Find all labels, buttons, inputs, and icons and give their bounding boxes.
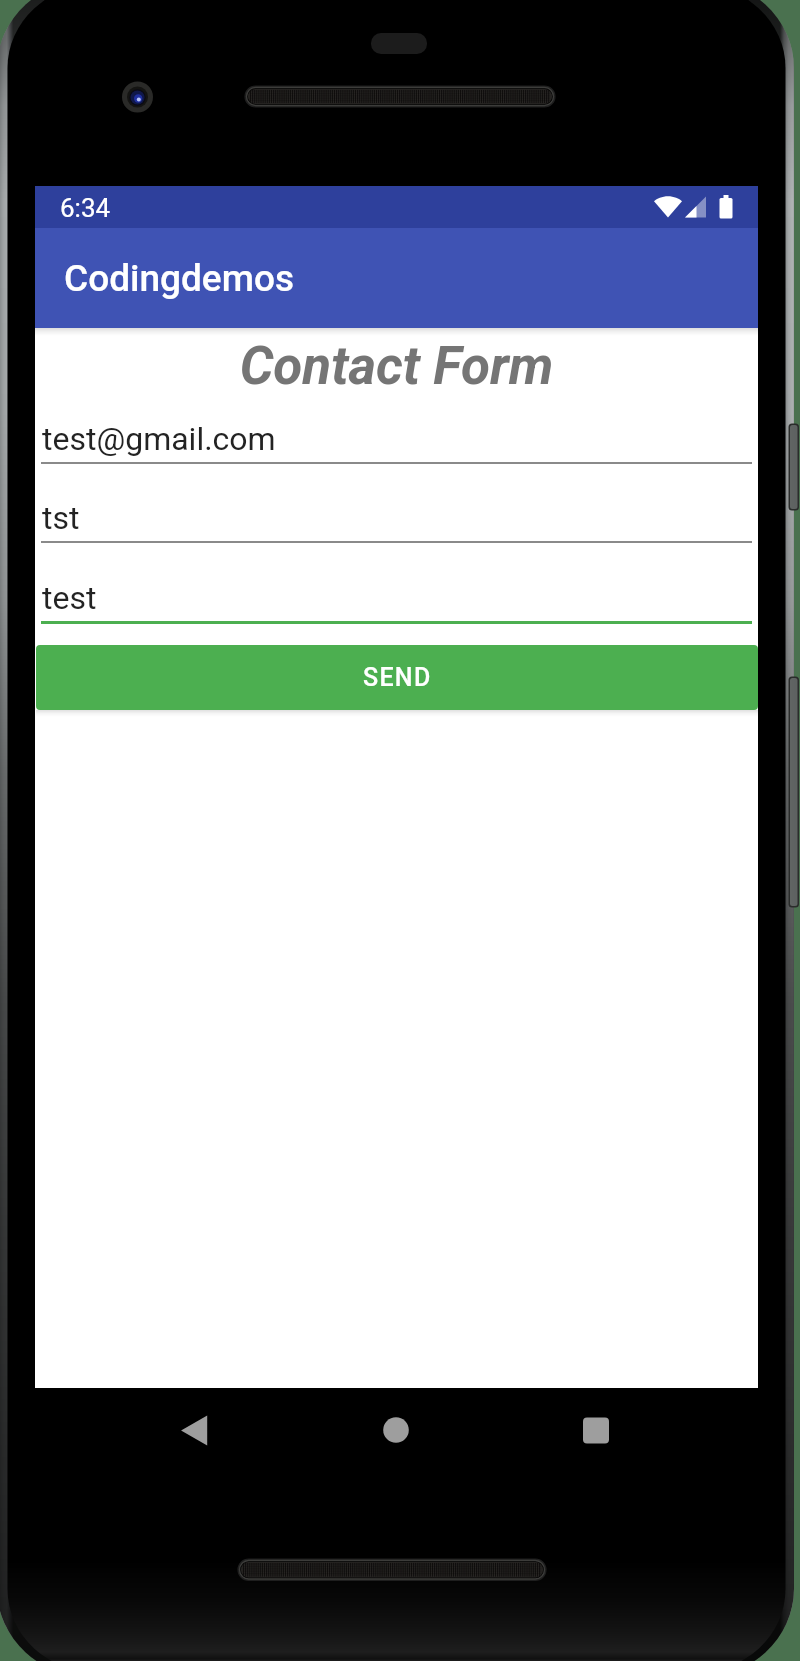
staticText: Codingdemos: [64, 257, 294, 300]
button[interactable]: test: [41, 566, 752, 621]
button[interactable]: Recent apps: [553, 1388, 625, 1484]
staticText: test@gmail.com: [42, 420, 276, 458]
staticText: SEND: [363, 663, 432, 692]
staticText: tst: [42, 499, 80, 537]
staticText: Contact Form: [35, 335, 758, 397]
button[interactable]: tst: [41, 486, 752, 541]
staticText: test: [42, 579, 97, 617]
button[interactable]: test@gmail.com: [41, 407, 752, 462]
button[interactable]: SEND: [36, 645, 758, 710]
button[interactable]: Home: [353, 1388, 425, 1484]
button[interactable]: Back: [152, 1388, 224, 1484]
staticText: 6:34: [60, 193, 111, 223]
